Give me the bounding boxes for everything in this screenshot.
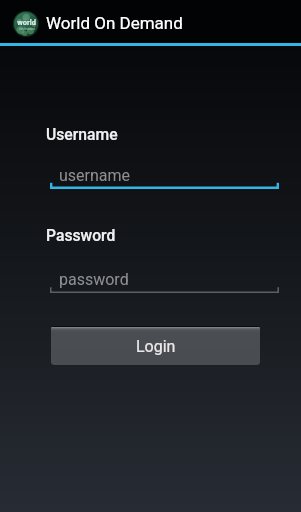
button[interactable]: Login — [51, 327, 260, 365]
staticText: on demand — [19, 27, 35, 31]
staticText: world — [17, 18, 36, 27]
staticText: Password — [46, 226, 116, 244]
staticText: Login — [136, 337, 176, 356]
staticText: username — [59, 166, 131, 185]
staticText: Username — [46, 125, 118, 143]
button[interactable]: password — [50, 271, 279, 293]
staticText: World On Demand — [46, 13, 183, 33]
button[interactable]: username — [50, 167, 279, 189]
staticText: password — [59, 270, 129, 289]
button[interactable]: World On Demand home — [13, 11, 39, 37]
